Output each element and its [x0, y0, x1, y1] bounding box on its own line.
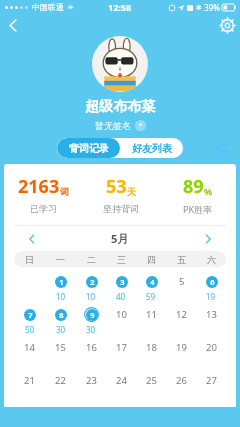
staticText: 四 [147, 254, 156, 265]
staticText: 好友列表 [132, 142, 172, 155]
staticText: 30 [86, 324, 96, 335]
staticText: 26 [176, 374, 187, 387]
staticText: 16 [86, 341, 97, 354]
staticText: 7 [28, 310, 33, 320]
button[interactable]: 17 [106, 337, 136, 370]
staticText: 坚持背词 [103, 203, 139, 214]
button[interactable]: 16 [76, 337, 106, 370]
button[interactable]: 10 [106, 304, 136, 337]
button[interactable]: 7 [14, 304, 45, 337]
staticText: 2 [90, 277, 95, 287]
staticText: 22 [55, 374, 66, 387]
staticText: 10 [116, 308, 127, 321]
button[interactable]: 13 [196, 304, 226, 337]
button[interactable]: 2 [76, 271, 106, 304]
button[interactable]: Previous month [22, 229, 42, 249]
staticText: 27 [206, 374, 217, 387]
button[interactable]: 2163 [4, 174, 82, 214]
staticText: % [204, 185, 213, 197]
button[interactable]: 21 [14, 370, 45, 403]
button[interactable]: 23 [76, 370, 106, 403]
staticText: 暂无签名 [95, 120, 131, 131]
staticText: 89 [183, 174, 204, 199]
button[interactable]: 18 [136, 337, 166, 370]
button[interactable]: 89 [159, 174, 236, 215]
button[interactable]: 12 [166, 304, 196, 337]
staticText: 21 [24, 374, 35, 387]
button[interactable]: 3 [106, 271, 136, 304]
staticText: 23 [86, 374, 97, 387]
staticText: 5 [179, 275, 185, 288]
staticText: 59 [146, 291, 156, 302]
staticText: 五 [177, 254, 186, 265]
staticText: 2163 [18, 174, 60, 199]
staticText: 中国联通 [32, 2, 64, 12]
staticText: 11 [146, 308, 157, 321]
button[interactable]: 8 [45, 304, 76, 337]
button[interactable]: 25 [136, 370, 166, 403]
staticText: 一 [56, 254, 65, 265]
staticText: 14 [24, 341, 35, 354]
button[interactable]: 暂无签名 [95, 120, 146, 131]
staticText: 4 [150, 277, 155, 287]
staticText: 二 [87, 254, 96, 265]
button[interactable]: 4 [136, 271, 166, 304]
button[interactable]: 19 [166, 337, 196, 370]
staticText: 5月 [111, 231, 129, 246]
button[interactable]: 53 [82, 174, 159, 214]
button[interactable]: Next month [198, 229, 218, 249]
staticText: 15 [55, 341, 66, 354]
staticText: 30 [56, 324, 66, 335]
staticText: 超级布布菜 [85, 98, 155, 116]
button[interactable]: 14 [14, 337, 45, 370]
staticText: 13 [206, 308, 217, 321]
button[interactable]: Share [210, 137, 232, 159]
button[interactable]: 24 [106, 370, 136, 403]
button[interactable]: 6 [196, 271, 226, 304]
staticText: 天 [127, 186, 136, 197]
staticText: ✻ [196, 4, 202, 12]
staticText: 三 [117, 254, 126, 265]
staticText: 19 [206, 291, 216, 302]
staticText: 10 [56, 291, 66, 302]
staticText: 12 [176, 308, 187, 321]
button[interactable]: Avatar [92, 36, 148, 92]
staticText: 25 [146, 374, 157, 387]
staticText: 17 [116, 341, 127, 354]
staticText: ❞ [139, 122, 143, 129]
button[interactable]: 27 [196, 370, 226, 403]
button[interactable]: 22 [45, 370, 76, 403]
staticText: 53 [106, 174, 127, 199]
staticText: 六 [207, 254, 216, 265]
button[interactable]: 9 [76, 304, 106, 337]
button[interactable]: 11 [136, 304, 166, 337]
staticText: PK胜率 [183, 203, 213, 215]
staticText: 19 [176, 341, 187, 354]
staticText: 9 [90, 310, 95, 320]
staticText: 10 [86, 291, 96, 302]
staticText: 18 [146, 341, 157, 354]
staticText: 12:58 [108, 1, 132, 13]
button[interactable]: Back [0, 14, 26, 36]
staticText: 8 [59, 310, 64, 320]
staticText: 1 [59, 277, 64, 287]
button[interactable]: 20 [196, 337, 226, 370]
staticText: 日 [25, 254, 34, 265]
staticText: 背词记录 [69, 142, 109, 155]
button[interactable]: 5 [166, 271, 196, 304]
staticText: 词 [60, 186, 69, 197]
button[interactable]: 好友列表 [120, 138, 183, 158]
button[interactable]: 26 [166, 370, 196, 403]
button[interactable]: Settings [214, 14, 240, 36]
staticText: 6 [210, 277, 215, 287]
staticText: 50 [25, 324, 35, 335]
button[interactable]: 背词记录 [57, 138, 120, 158]
staticText: 3 [120, 277, 125, 287]
button[interactable]: 15 [45, 337, 76, 370]
staticText: 24 [116, 374, 127, 387]
staticText: 已学习 [30, 203, 57, 214]
button[interactable]: 1 [45, 271, 76, 304]
staticText: 20 [206, 341, 217, 354]
staticText: 40 [116, 291, 126, 302]
staticText: 39% [204, 2, 220, 13]
